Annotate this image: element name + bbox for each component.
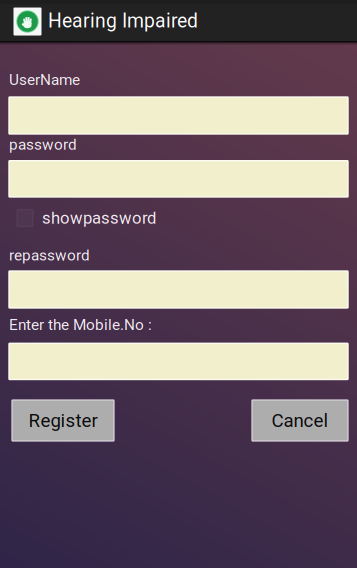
button[interactable]: Register [12, 400, 114, 441]
staticText: Cancel [271, 410, 328, 431]
staticText: showpassword [42, 208, 156, 228]
button[interactable]: Cancel [252, 400, 348, 441]
staticText: Hearing Impaired [48, 10, 198, 32]
staticText: repassword [9, 246, 90, 264]
staticText: password [9, 135, 77, 153]
button[interactable]: showpassword [9, 207, 348, 229]
staticText: Enter the Mobile.No : [9, 316, 152, 334]
staticText: UserName [9, 71, 80, 89]
staticText: Register [28, 410, 97, 431]
